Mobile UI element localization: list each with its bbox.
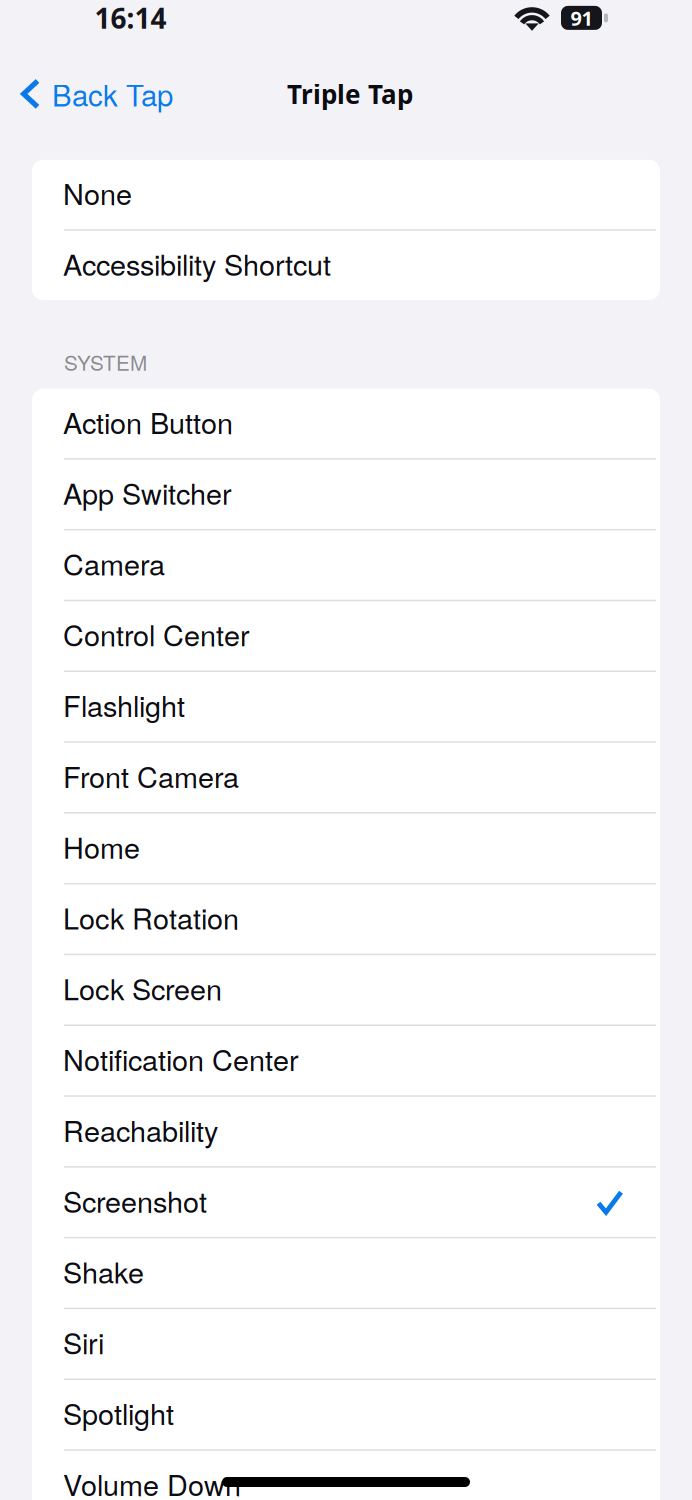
staticText: Lock Screen [63,967,222,1008]
staticText: Lock Rotation [63,896,239,938]
staticText: Back Tap [52,73,173,115]
button[interactable]: Spotlight [32,1380,660,1449]
button[interactable]: Volume Down [32,1451,660,1500]
staticText: 91 [570,4,592,31]
button[interactable]: Notification Center [32,1026,660,1095]
staticText: Action Button [63,401,233,442]
staticText: Home [63,826,140,867]
staticText: Flashlight [63,684,185,725]
button[interactable]: Reachability [32,1097,660,1166]
staticText: Triple Tap [287,76,413,112]
staticText: Control Center [63,613,250,654]
staticText: Front Camera [63,755,239,796]
staticText: Camera [63,542,165,584]
staticText: SYSTEM [64,347,147,377]
staticText: Reachability [63,1109,218,1150]
staticText: Siri [63,1321,104,1362]
staticText: None [63,172,132,213]
button[interactable]: None [32,160,660,229]
staticText: 16:14 [94,0,166,37]
button[interactable]: Flashlight [32,672,660,741]
staticText: Accessibility Shortcut [63,243,331,284]
button[interactable]: Siri [32,1309,660,1378]
staticText: Volume Down [63,1463,241,1500]
button[interactable]: Screenshot [32,1168,660,1237]
button[interactable]: Back Tap [0,66,187,122]
staticText: App Switcher [63,472,232,513]
button[interactable]: Home [32,814,660,883]
button[interactable]: Lock Rotation [32,884,660,954]
staticText: Screenshot [63,1180,207,1221]
staticText: Spotlight [63,1392,174,1433]
button[interactable]: Control Center [32,601,660,670]
button[interactable]: Front Camera [32,743,660,812]
button[interactable]: App Switcher [32,460,660,529]
button[interactable]: Accessibility Shortcut [32,231,660,300]
button[interactable]: Shake [32,1238,660,1308]
staticText: Notification Center [63,1038,299,1079]
button[interactable]: Action Button [32,389,660,458]
button[interactable]: Camera [32,530,660,600]
staticText: Shake [63,1250,144,1292]
button[interactable]: Lock Screen [32,955,660,1024]
